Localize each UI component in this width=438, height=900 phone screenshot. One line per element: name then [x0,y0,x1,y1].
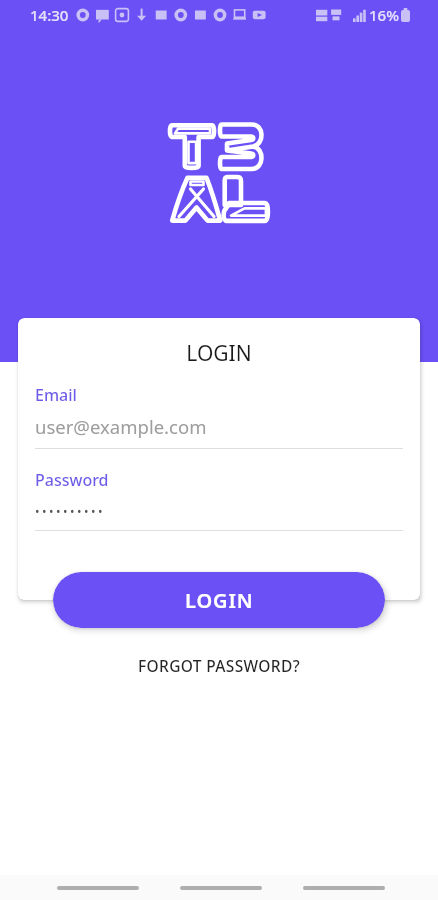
staticText: Password [35,469,109,491]
staticText: FORGOT PASSWORD? [138,655,300,676]
button[interactable]: Recents [57,875,139,900]
staticText: LOGIN [35,339,403,368]
staticText: LOGIN [185,587,254,614]
staticText: 14:30 [30,5,69,25]
staticText: •••••••••• [35,503,106,519]
button[interactable]: FORGOT PASSWORD? [128,650,310,681]
button[interactable]: LOGIN [53,572,385,628]
button[interactable]: Back [303,875,385,900]
button[interactable]: Home [180,875,262,900]
staticText: Email [35,384,77,406]
staticText: 16% [369,5,399,25]
staticText: user@example.com [35,414,207,439]
